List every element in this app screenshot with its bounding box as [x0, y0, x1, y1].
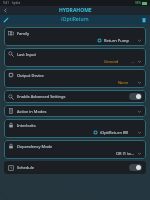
staticText: iOptiReturn — [61, 16, 89, 23]
button[interactable]: Output device — [8, 72, 142, 78]
staticText: hydra — [12, 1, 21, 5]
button[interactable]: Toggle — [129, 164, 142, 171]
button[interactable]: Delete — [141, 17, 147, 23]
button[interactable]: Last input — [8, 51, 142, 57]
other: Interlocks — [8, 122, 14, 128]
other: Return pump — [97, 38, 102, 43]
button[interactable]: Toggle — [129, 93, 142, 100]
staticText: Last Input — [17, 52, 36, 57]
other: Device — [93, 130, 98, 135]
button[interactable]: Edit — [3, 17, 9, 23]
button[interactable]: Interlocks — [8, 122, 142, 128]
button[interactable]: OR (1 to… — [8, 149, 142, 156]
staticText: OR (1 to… — [116, 151, 135, 156]
staticText: Family — [17, 31, 30, 36]
staticText: Ground — [104, 59, 119, 64]
other: Dependency mode — [8, 143, 14, 149]
button[interactable]: Active in modes — [8, 108, 142, 114]
other: Output device — [8, 72, 14, 78]
staticText: 9:41 — [3, 1, 9, 5]
other: Last input — [8, 51, 14, 57]
staticText: 98% — [135, 1, 141, 5]
other: Active in modes — [8, 108, 14, 114]
staticText: Enable Advanced Settings — [17, 94, 66, 99]
button[interactable]: Advanced — [8, 93, 142, 100]
staticText: – — [132, 59, 134, 64]
staticText: HYDRAHOME — [59, 7, 92, 14]
other: Advanced — [8, 94, 14, 100]
staticText: Schedule — [17, 165, 35, 170]
staticText: Interlocks — [17, 123, 36, 128]
other: Family — [8, 30, 14, 36]
other: Schedule — [8, 165, 14, 171]
button[interactable]: Schedule — [8, 164, 142, 171]
staticText: None — [118, 80, 129, 85]
staticText: Active in Modes — [17, 109, 47, 114]
button[interactable]: Return pump — [8, 36, 142, 43]
button[interactable]: Back — [2, 7, 9, 14]
button[interactable]: None — [8, 78, 142, 85]
staticText: Return Pump — [104, 38, 129, 43]
staticText: Dependency Mode — [17, 144, 53, 149]
button[interactable]: Ground — [8, 57, 142, 64]
staticText: Output Device — [17, 73, 44, 78]
staticText: iOptiReturn BR — [100, 130, 129, 135]
button[interactable]: Device — [8, 128, 142, 135]
button[interactable]: Family — [8, 30, 142, 36]
button[interactable]: Dependency mode — [8, 143, 142, 149]
